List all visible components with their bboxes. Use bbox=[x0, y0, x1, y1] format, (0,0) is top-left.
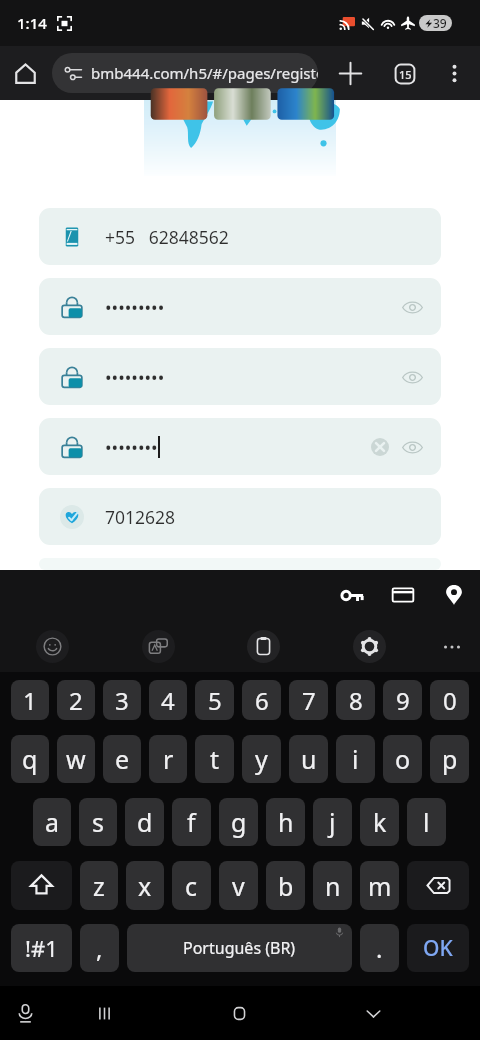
staticText: u bbox=[301, 742, 317, 776]
button[interactable]: t bbox=[195, 735, 234, 783]
button[interactable]: 2 bbox=[57, 680, 95, 720]
staticText: f bbox=[187, 805, 196, 839]
button[interactable]: Show password bbox=[395, 360, 429, 394]
button[interactable]: h bbox=[266, 798, 305, 846]
button[interactable]: l bbox=[407, 798, 446, 846]
button[interactable]: New tab bbox=[329, 52, 372, 95]
button[interactable]: , bbox=[80, 924, 119, 972]
button[interactable]: 3 bbox=[103, 680, 141, 720]
staticText: 3 bbox=[115, 684, 129, 717]
staticText: Português (BR) bbox=[183, 937, 296, 959]
button[interactable]: a bbox=[33, 798, 71, 846]
button[interactable]: s bbox=[79, 798, 117, 846]
button[interactable]: +55 62848562 bbox=[39, 208, 441, 265]
button[interactable]: o bbox=[383, 735, 422, 783]
staticText: l bbox=[423, 805, 430, 839]
button[interactable]: b bbox=[266, 861, 305, 910]
button[interactable]: k bbox=[360, 798, 399, 846]
button[interactable]: 6 bbox=[242, 680, 281, 720]
staticText: z bbox=[93, 869, 105, 903]
staticText: bmb444.com/h5/#/pages/register/ind bbox=[91, 63, 318, 83]
staticText: k bbox=[373, 805, 387, 839]
staticText: i bbox=[352, 742, 359, 776]
button[interactable]: 8 bbox=[336, 680, 375, 720]
staticText: h bbox=[278, 805, 294, 839]
button[interactable]: Shift bbox=[11, 861, 72, 910]
button[interactable]: More options bbox=[435, 630, 468, 663]
button[interactable]: v bbox=[219, 861, 258, 910]
button[interactable]: bmb444.com/h5/#/pages/register/ind bbox=[52, 53, 318, 93]
button[interactable]: Backspace bbox=[407, 861, 469, 910]
button[interactable]: r bbox=[149, 735, 187, 783]
button[interactable]: i bbox=[336, 735, 375, 783]
staticText: e bbox=[115, 742, 130, 776]
button[interactable]: 1 bbox=[11, 680, 49, 720]
button[interactable]: f bbox=[172, 798, 211, 846]
button[interactable]: ••••••••• bbox=[39, 348, 441, 405]
staticText: ••••••••• bbox=[105, 295, 165, 319]
button[interactable]: d bbox=[125, 798, 164, 846]
button[interactable]: ••••••••• bbox=[39, 278, 441, 335]
button[interactable]: Recent apps bbox=[37, 986, 172, 1040]
staticText: 8 bbox=[349, 684, 363, 717]
button[interactable]: y bbox=[242, 735, 281, 783]
button[interactable]: Passwords bbox=[334, 577, 370, 613]
button[interactable]: m bbox=[360, 861, 399, 910]
button[interactable]: Clipboard bbox=[247, 630, 280, 663]
button[interactable]: Hide keyboard bbox=[306, 986, 440, 1040]
staticText: !#1 bbox=[25, 933, 58, 963]
staticText: p bbox=[442, 742, 458, 776]
staticText: 2 bbox=[69, 684, 83, 717]
button[interactable]: u bbox=[289, 735, 328, 783]
staticText: 1:14 bbox=[17, 13, 47, 33]
button[interactable]: Payment methods bbox=[385, 577, 421, 613]
button[interactable]: 0 bbox=[430, 680, 469, 720]
button[interactable]: z bbox=[80, 861, 118, 910]
staticText: b bbox=[278, 869, 294, 903]
button[interactable]: Settings bbox=[353, 630, 386, 663]
staticText: t bbox=[210, 742, 220, 776]
button[interactable]: w bbox=[57, 735, 95, 783]
staticText: q bbox=[22, 742, 38, 776]
staticText: v bbox=[232, 869, 245, 903]
button[interactable]: Show password bbox=[395, 290, 429, 324]
staticText: c bbox=[185, 869, 198, 903]
button[interactable]: 7012628 bbox=[39, 488, 441, 545]
button[interactable]: n bbox=[313, 861, 352, 910]
button[interactable]: 5 bbox=[195, 680, 234, 720]
button[interactable]: More options bbox=[433, 52, 476, 95]
button[interactable]: j bbox=[313, 798, 352, 846]
button[interactable]: Translate bbox=[142, 630, 175, 663]
button[interactable]: x bbox=[126, 861, 164, 910]
button[interactable]: Clear text bbox=[365, 432, 395, 462]
button[interactable]: Addresses bbox=[436, 577, 472, 613]
button[interactable]: Home bbox=[172, 986, 306, 1040]
button[interactable]: q bbox=[11, 735, 49, 783]
staticText: ••••••••• bbox=[105, 365, 165, 389]
button[interactable]: e bbox=[103, 735, 141, 783]
button[interactable]: OK bbox=[407, 924, 469, 972]
button[interactable]: !#1 bbox=[11, 924, 72, 972]
button[interactable]: 7 bbox=[289, 680, 328, 720]
button[interactable]: Tabs bbox=[383, 52, 426, 95]
button[interactable]: . bbox=[360, 924, 399, 972]
staticText: r bbox=[163, 742, 174, 776]
button[interactable]: •••••••• bbox=[39, 418, 441, 475]
button[interactable]: Voice input bbox=[8, 996, 42, 1030]
staticText: g bbox=[231, 805, 247, 839]
staticText: a bbox=[45, 805, 60, 839]
button[interactable]: Show password bbox=[395, 430, 429, 464]
staticText: x bbox=[138, 869, 152, 903]
staticText: 39 bbox=[433, 15, 447, 31]
button[interactable]: Emoji bbox=[36, 630, 69, 663]
staticText: s bbox=[92, 805, 104, 839]
button[interactable]: Português (BR) bbox=[127, 924, 352, 972]
button[interactable]: g bbox=[219, 798, 258, 846]
button[interactable]: p bbox=[430, 735, 469, 783]
button[interactable]: 9 bbox=[383, 680, 422, 720]
staticText: 6 bbox=[255, 684, 269, 717]
staticText: +55 62848562 bbox=[105, 225, 229, 249]
button[interactable]: c bbox=[172, 861, 211, 910]
button[interactable]: 4 bbox=[149, 680, 187, 720]
button[interactable]: Home bbox=[4, 52, 47, 95]
